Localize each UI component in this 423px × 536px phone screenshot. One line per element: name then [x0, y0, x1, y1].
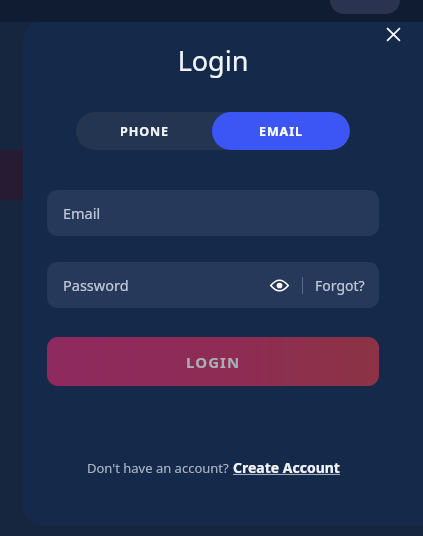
- button[interactable]: Close: [378, 19, 409, 50]
- button[interactable]: Forgot?: [315, 276, 365, 295]
- button[interactable]: Show password: [266, 272, 292, 298]
- staticText: Password: [63, 275, 129, 295]
- staticText: Create Account: [233, 458, 340, 477]
- button[interactable]: LOGIN: [47, 337, 379, 386]
- button[interactable]: PHONE: [76, 112, 212, 150]
- staticText: EMAIL: [259, 123, 303, 140]
- button[interactable]: Password: [47, 262, 379, 308]
- staticText: LOGIN: [186, 352, 241, 372]
- staticText: Login: [47, 42, 379, 79]
- button[interactable]: Create Account: [233, 458, 340, 477]
- staticText: Don't have an account?: [87, 459, 233, 477]
- staticText: Forgot?: [315, 276, 365, 295]
- button[interactable]: EMAIL: [212, 112, 350, 150]
- button[interactable]: Email: [47, 190, 379, 236]
- staticText: PHONE: [120, 123, 169, 140]
- staticText: Email: [63, 203, 101, 223]
